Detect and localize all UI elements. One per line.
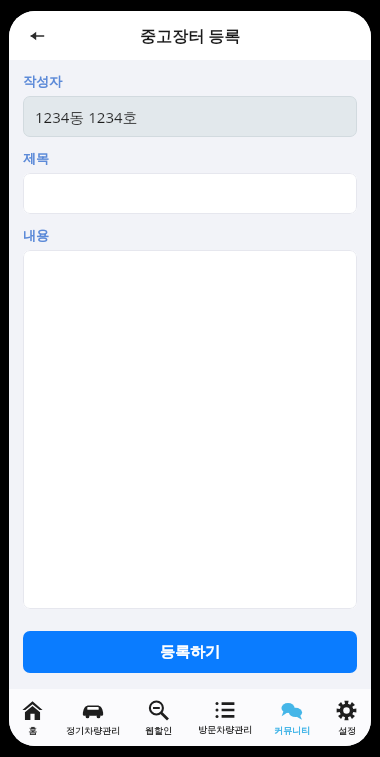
button[interactable]: 홈 xyxy=(9,689,55,746)
button[interactable]: 커뮤니티 xyxy=(262,689,322,746)
staticText: 등록하기 xyxy=(160,643,220,662)
button[interactable]: 설정 xyxy=(322,689,371,746)
button[interactable] xyxy=(23,173,357,214)
button[interactable]: Back xyxy=(17,16,57,56)
staticText: 제목 xyxy=(23,150,49,166)
button[interactable]: 웹할인 xyxy=(130,689,187,746)
button[interactable]: 등록하기 xyxy=(23,631,357,673)
staticText: 작성자 xyxy=(23,73,62,89)
staticText: 내용 xyxy=(23,227,49,243)
staticText: 방문차량관리 xyxy=(198,724,252,735)
staticText: 1234동 1234호 xyxy=(35,107,138,127)
staticText: 홈 xyxy=(28,725,37,736)
staticText: 중고장터 등록 xyxy=(140,25,241,47)
staticText: 정기차량관리 xyxy=(66,725,120,736)
button[interactable]: 방문차량관리 xyxy=(187,689,262,746)
staticText: 커뮤니티 xyxy=(274,725,310,736)
button[interactable]: 1234동 1234호 xyxy=(23,96,357,137)
staticText: 설정 xyxy=(338,725,356,736)
staticText: 웹할인 xyxy=(145,725,172,736)
button[interactable]: 정기차량관리 xyxy=(55,689,130,746)
